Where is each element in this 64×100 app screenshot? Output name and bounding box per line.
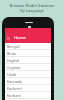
staticText: English [7, 58, 20, 63]
button[interactable]: Kashmiri [5, 85, 51, 92]
button[interactable]: English [5, 57, 51, 64]
staticText: Gujarati [7, 65, 21, 70]
staticText: Kashmiri [7, 86, 22, 91]
staticText: Hindi [7, 72, 16, 77]
staticText: Bodo [7, 51, 16, 56]
staticText: Home [14, 35, 26, 41]
button[interactable]: Konkani [5, 92, 51, 99]
button[interactable]: Bodo [5, 50, 51, 57]
button[interactable]: Menu [6, 36, 10, 40]
button[interactable]: Hindi [5, 71, 51, 78]
staticText: Kannada [7, 79, 22, 84]
button[interactable]: Bengali [5, 43, 51, 50]
staticText: Konkani [7, 93, 21, 98]
button[interactable]: Kannada [5, 78, 51, 85]
button[interactable]: Gujarati [5, 64, 51, 71]
staticText: Browse Radio Stations [0, 2, 64, 8]
staticText: Bengali [7, 44, 20, 49]
staticText: By Language [0, 8, 64, 13]
